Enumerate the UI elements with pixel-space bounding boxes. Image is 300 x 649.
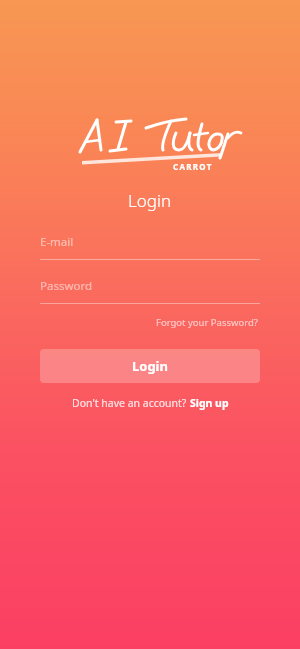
- staticText: E-mail: [40, 234, 74, 250]
- staticText: CARROT: [173, 161, 213, 172]
- staticText: Don't have an account?: [72, 396, 190, 410]
- staticText: Password: [40, 278, 93, 294]
- button[interactable]: Forgot your Password?: [154, 314, 260, 331]
- button[interactable]: E-mail: [40, 234, 260, 260]
- button[interactable]: Login: [40, 349, 260, 383]
- staticText: Login: [128, 189, 172, 212]
- button[interactable]: Password: [40, 278, 260, 304]
- staticText: Sign up: [190, 396, 229, 410]
- other: AI Tutor logo: [0, 114, 300, 166]
- staticText: Forgot your Password?: [156, 316, 258, 329]
- button[interactable]: Sign up: [190, 396, 229, 410]
- staticText: Login: [132, 357, 168, 375]
